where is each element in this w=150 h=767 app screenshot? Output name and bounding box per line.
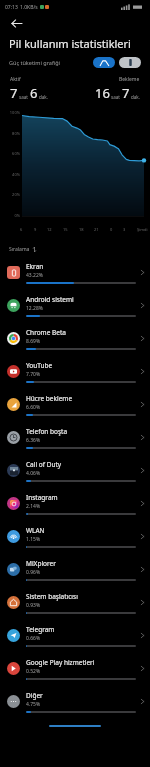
button[interactable]: WLAN [0, 520, 150, 553]
staticText: 4.06% [26, 470, 41, 477]
staticText: 12.28% [26, 305, 43, 312]
staticText: 3 [123, 227, 126, 232]
staticText: 0 [110, 227, 113, 232]
staticText: Instagram [26, 493, 58, 502]
staticText: 2.14% [26, 503, 41, 510]
button[interactable]: Ekran [0, 256, 150, 289]
button[interactable]: Sıralama [9, 242, 150, 256]
button[interactable]: Google Play hizmetleri [0, 652, 150, 685]
staticText: Hücre bekleme [26, 394, 73, 403]
staticText: 0.66% [26, 635, 41, 642]
button[interactable]: Diğer [0, 685, 150, 718]
button[interactable]: Chrome Beta [0, 322, 150, 355]
staticText: 43.22% [26, 272, 43, 279]
staticText: 6 [30, 84, 38, 102]
staticText: Call of Duty [26, 460, 62, 469]
button[interactable]: Call of Duty [0, 454, 150, 487]
staticText: 21 [94, 227, 99, 232]
staticText: Telefon boşta [26, 427, 68, 436]
button[interactable]: Hücre bekleme [0, 388, 150, 421]
staticText: 7 [10, 84, 18, 102]
staticText: 0.52% [26, 668, 41, 675]
staticText: Android sistemi [26, 295, 74, 304]
staticText: MiXplorer [26, 559, 56, 568]
staticText: 4.75% [26, 701, 41, 708]
button[interactable]: Battery level [119, 57, 141, 68]
button[interactable]: YouTube [0, 355, 150, 388]
button[interactable]: Back [7, 14, 25, 32]
staticText: 60% [0, 151, 20, 156]
staticText: 15 [63, 227, 68, 232]
staticText: Aktif [10, 76, 21, 83]
staticText: 80% [0, 131, 20, 136]
staticText: 18 [79, 227, 84, 232]
staticText: 20% [0, 192, 20, 197]
staticText: Pil kullanım istatistikleri [9, 36, 131, 51]
button[interactable]: Android sistemi [0, 289, 150, 322]
staticText: 0% [0, 213, 20, 218]
button[interactable]: Sistem başlatıcısı [0, 586, 150, 619]
staticText: 1.15% [26, 536, 41, 543]
staticText: 40% [0, 172, 20, 177]
staticText: saat [19, 94, 28, 100]
staticText: Bekleme [119, 76, 140, 83]
staticText: 100% [0, 110, 20, 115]
staticText: Sistem başlatıcısı [26, 592, 78, 601]
staticText: Google Play hizmetleri [26, 658, 95, 667]
staticText: 6.36% [26, 437, 41, 444]
staticText: Diğer [26, 691, 43, 700]
staticText: Chrome Beta [26, 328, 66, 337]
button[interactable]: Telefon boşta [0, 421, 150, 454]
button[interactable]: Power graph [93, 57, 115, 68]
staticText: 9 [34, 227, 37, 232]
staticText: Sıralama [9, 246, 30, 253]
staticText: YouTube [26, 361, 53, 370]
staticText: Güç tüketimi grafiği [9, 59, 61, 66]
staticText: 6 [20, 227, 23, 232]
staticText: 6.60% [26, 404, 41, 411]
staticText: 7 [122, 84, 130, 102]
staticText: 07:13 [5, 4, 18, 11]
staticText: Ekran [26, 262, 44, 271]
staticText: 16 [95, 84, 110, 102]
staticText: dak. [39, 94, 48, 100]
staticText: saat [111, 94, 120, 100]
staticText: 0.96% [26, 569, 41, 576]
staticText: Şimdi [137, 227, 148, 232]
staticText: WLAN [26, 526, 45, 535]
staticText: 8.69% [26, 338, 41, 345]
staticText: 0.93% [26, 602, 41, 609]
staticText: 1.0KB/s [20, 4, 38, 11]
staticText: dak. [131, 94, 140, 100]
button[interactable]: Instagram [0, 487, 150, 520]
button[interactable]: MiXplorer [0, 553, 150, 586]
staticText: 7.70% [26, 371, 41, 378]
staticText: Telegram [26, 625, 55, 634]
button[interactable]: Telegram [0, 619, 150, 652]
staticText: 12 [47, 227, 52, 232]
